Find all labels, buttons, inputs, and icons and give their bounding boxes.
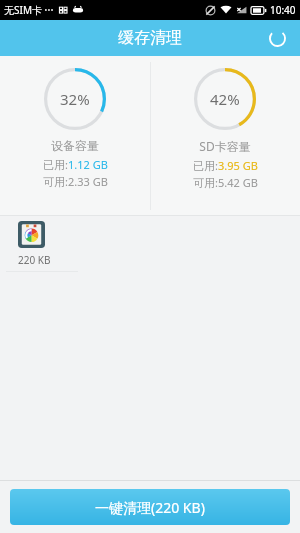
- staticText: 可用:2.33 GB: [43, 174, 108, 189]
- staticText: 可用:5.42 GB: [193, 175, 258, 190]
- button[interactable]: 220 KB: [0, 216, 300, 272]
- staticText: 220 KB: [18, 253, 51, 267]
- staticText: 32%: [60, 89, 90, 109]
- button[interactable]: Refresh: [262, 23, 292, 53]
- staticText: 已用:3.95 GB: [193, 158, 258, 173]
- staticText: 10:40: [270, 3, 296, 17]
- staticText: 一键清理(220 KB): [95, 498, 205, 517]
- staticText: 缓存清理: [118, 28, 182, 48]
- staticText: 设备容量: [51, 138, 99, 153]
- staticText: 已用:1.12 GB: [43, 157, 108, 172]
- staticText: 42%: [210, 89, 240, 109]
- staticText: SD卡容量: [199, 138, 251, 154]
- button[interactable]: 一键清理(220 KB): [10, 489, 290, 525]
- staticText: 无SIM卡: [4, 3, 42, 17]
